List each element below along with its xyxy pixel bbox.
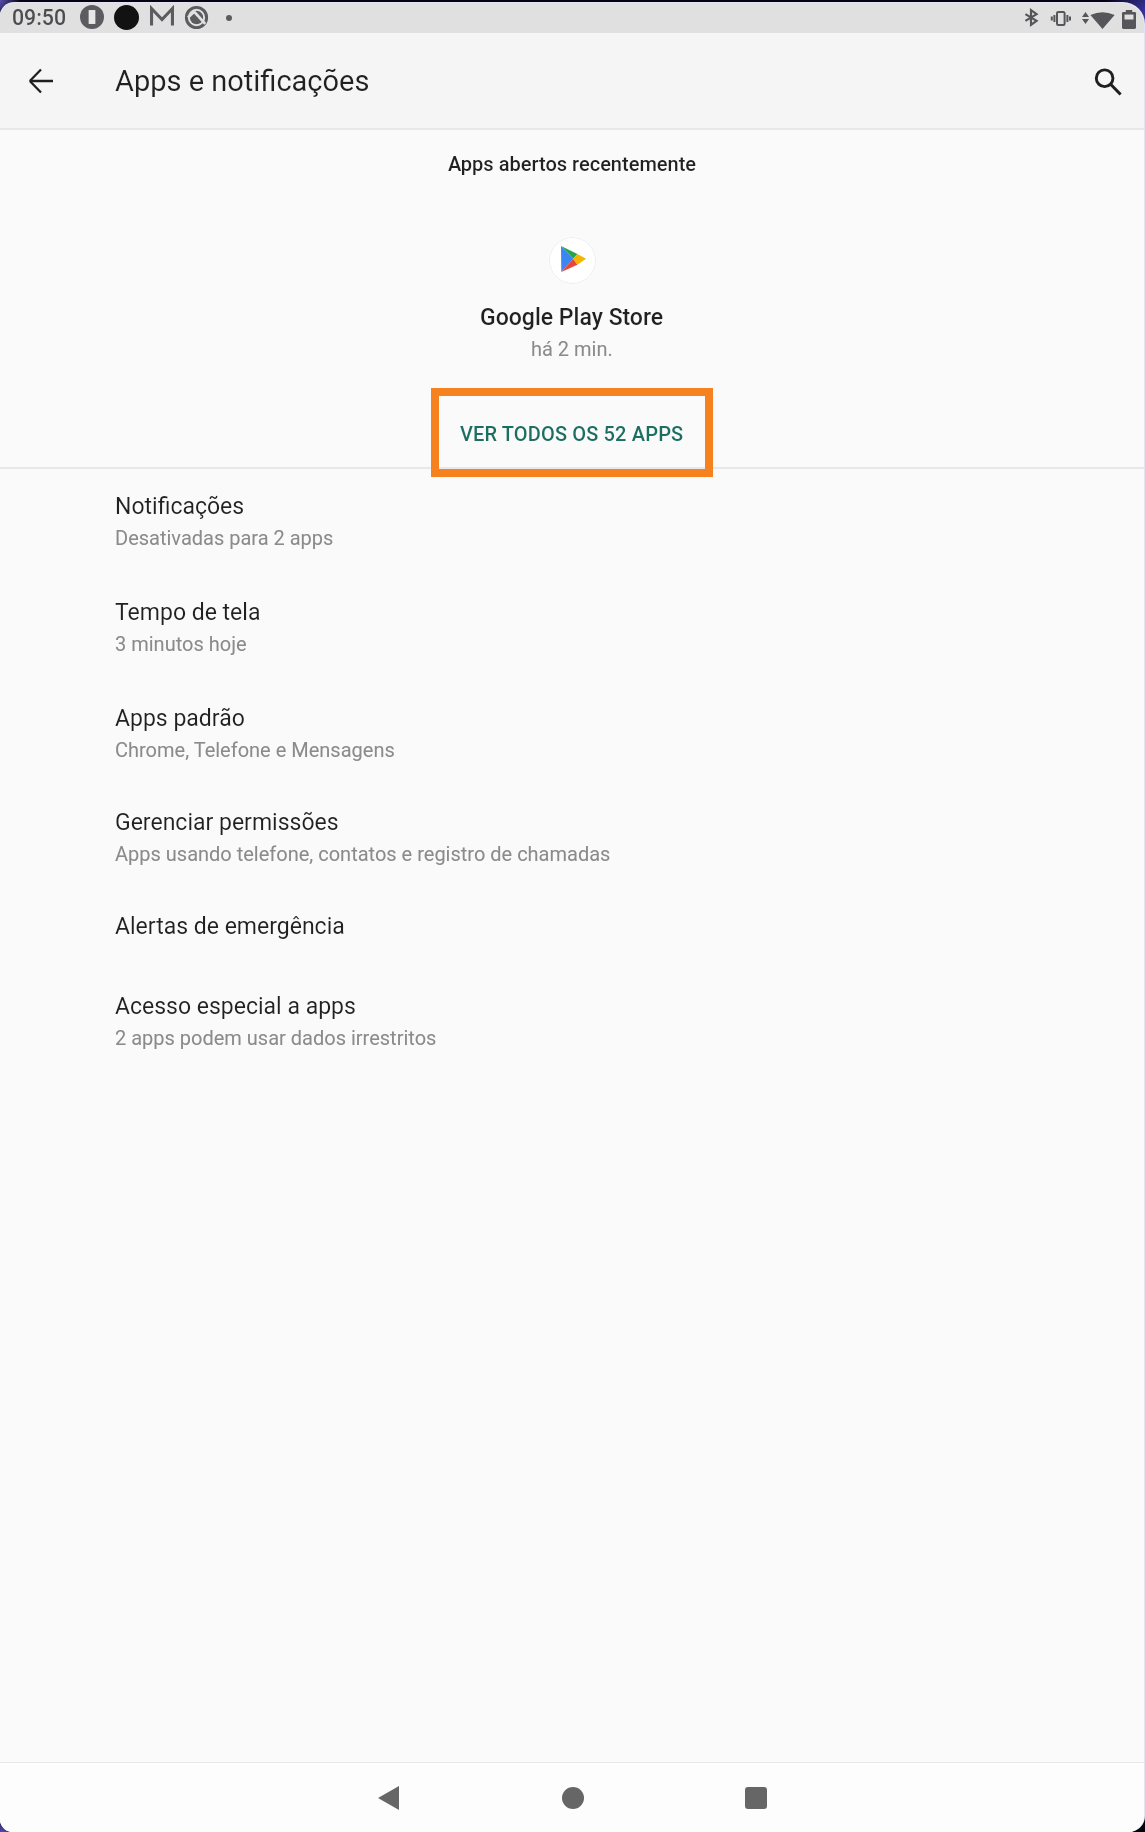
button[interactable]: Home xyxy=(537,1762,609,1832)
staticText: Chrome, Telefone e Mensagens xyxy=(115,738,395,761)
staticText: Google Play Store xyxy=(480,304,664,331)
staticText: há 2 min. xyxy=(531,337,613,360)
staticText: Alertas de emergência xyxy=(115,913,345,940)
button[interactable]: VER TODOS OS 52 APPS xyxy=(431,391,713,477)
staticText: Apps usando telefone, contatos e registr… xyxy=(115,842,611,865)
button[interactable]: Alertas de emergência xyxy=(0,897,1144,956)
button[interactable]: Google Play Store xyxy=(549,237,596,284)
button[interactable]: Apps padrão xyxy=(0,689,1144,777)
button[interactable]: Back xyxy=(9,49,73,113)
button[interactable]: Search xyxy=(1075,51,1139,115)
staticText: VER TODOS OS 52 APPS xyxy=(460,422,684,445)
button[interactable]: Tempo de tela xyxy=(0,583,1144,671)
staticText: Apps abertos recentemente xyxy=(448,152,697,175)
staticText: 3 minutos hoje xyxy=(115,632,247,655)
button[interactable]: Recent apps xyxy=(720,1762,792,1832)
button[interactable]: Notificações xyxy=(0,477,1144,565)
button[interactable]: Gerenciar permissões xyxy=(0,793,1144,881)
button[interactable]: Back xyxy=(352,1762,424,1832)
staticText: 2 apps podem usar dados irrestritos xyxy=(115,1026,437,1049)
staticText: Gerenciar permissões xyxy=(115,809,339,836)
staticText: Acesso especial a apps xyxy=(115,993,356,1020)
staticText: 09:50 xyxy=(12,5,67,30)
staticText: Tempo de tela xyxy=(115,599,261,626)
button[interactable]: Acesso especial a apps xyxy=(0,977,1144,1065)
staticText: Apps e notificações xyxy=(115,64,370,98)
staticText: Notificações xyxy=(115,493,245,520)
staticText: Desativadas para 2 apps xyxy=(115,526,334,549)
staticText: Apps padrão xyxy=(115,705,245,732)
